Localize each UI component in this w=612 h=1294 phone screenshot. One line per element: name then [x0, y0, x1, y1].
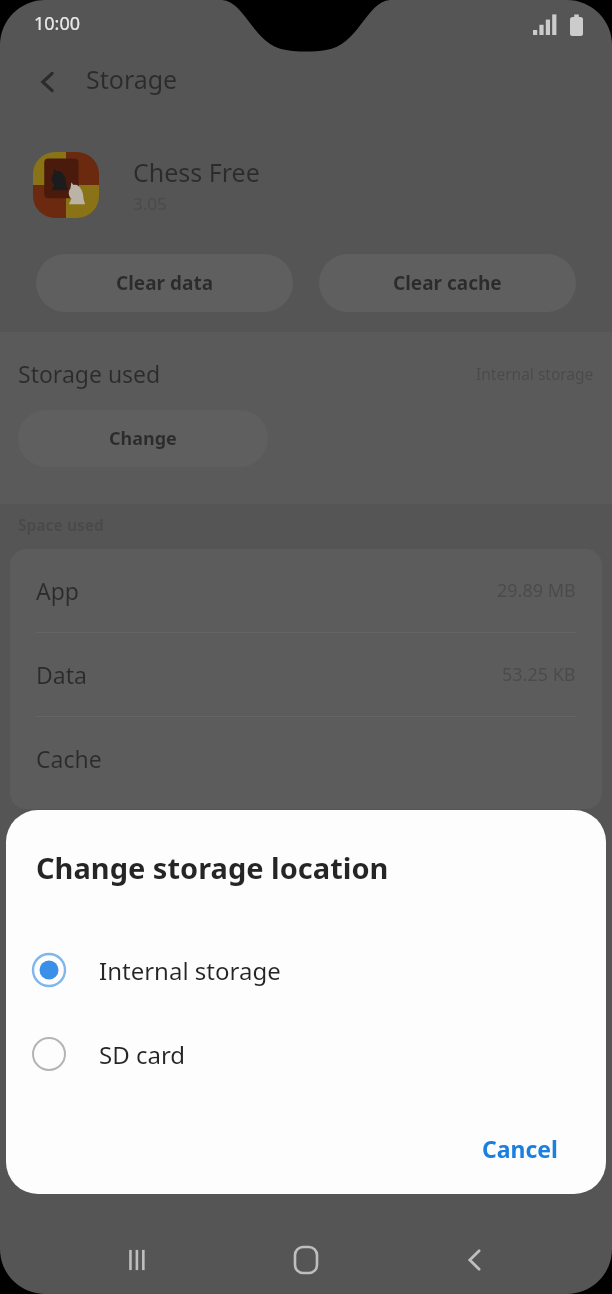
staticText: Internal storage — [99, 954, 281, 987]
staticText: Storage — [86, 62, 178, 96]
button[interactable]: App — [10, 549, 602, 632]
staticText: Clear data — [116, 270, 214, 296]
staticText: Internal storage — [476, 363, 594, 384]
button[interactable]: Clear cache — [319, 254, 576, 312]
staticText: Change — [109, 426, 177, 451]
staticText: 29.89 MB — [497, 578, 576, 603]
button[interactable]: Internal storage — [6, 939, 606, 1001]
button[interactable]: Home — [274, 1228, 338, 1292]
button[interactable]: Change — [18, 410, 268, 467]
button[interactable]: Back — [443, 1228, 507, 1292]
button[interactable]: Cache — [10, 717, 602, 800]
staticText: App — [36, 575, 79, 606]
button[interactable]: Clear data — [36, 254, 293, 312]
button[interactable]: Cancel — [452, 1117, 588, 1180]
staticText: Change storage location — [36, 848, 389, 887]
button[interactable]: SD card — [6, 1023, 606, 1085]
button[interactable]: Data — [10, 633, 602, 716]
staticText: Chess Free — [133, 155, 260, 189]
button[interactable]: Recent apps — [105, 1228, 169, 1292]
staticText: Space used — [18, 514, 104, 535]
staticText: 53.25 KB — [502, 662, 576, 687]
staticText: Storage used — [18, 358, 161, 389]
staticText: Data — [36, 659, 87, 690]
staticText: 10:00 — [34, 11, 81, 36]
staticText: Clear cache — [393, 270, 502, 296]
staticText: Cancel — [482, 1133, 558, 1164]
staticText: SD card — [99, 1038, 186, 1071]
staticText: 3.05 — [133, 192, 167, 215]
button[interactable]: Back — [22, 56, 74, 108]
staticText: Cache — [36, 743, 102, 774]
